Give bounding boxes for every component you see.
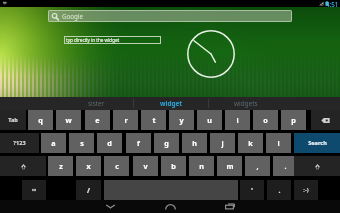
button[interactable]: z	[48, 156, 73, 176]
button[interactable]: t	[141, 110, 166, 130]
button[interactable]: e	[85, 110, 110, 130]
button[interactable]: .	[267, 180, 291, 200]
staticText: .	[284, 161, 287, 171]
staticText: f	[137, 138, 140, 148]
staticText: x	[86, 161, 91, 171]
staticText: Search	[308, 139, 327, 147]
button[interactable]: v	[133, 156, 158, 176]
button[interactable]: u	[197, 110, 222, 130]
staticText: l	[277, 138, 280, 148]
button[interactable]: h	[182, 133, 207, 153]
staticText: b	[171, 161, 176, 171]
button[interactable]: Switch keyboard	[22, 180, 46, 200]
button[interactable]: ?123	[0, 133, 39, 153]
button[interactable]: Tab	[0, 110, 26, 130]
staticText: y	[179, 115, 184, 125]
button[interactable]: typ directly in the widget	[64, 36, 161, 44]
button[interactable]: Backspace	[311, 110, 340, 130]
staticText: typ directly in the widget	[66, 37, 120, 43]
staticText: widgets	[234, 99, 258, 108]
staticText: k	[248, 138, 253, 148]
staticText: Google	[62, 12, 83, 20]
staticText: i	[236, 115, 239, 125]
button[interactable]: Shift	[294, 156, 340, 176]
button[interactable]: s	[69, 133, 94, 153]
button[interactable]: Search	[294, 133, 340, 153]
button[interactable]: Clock widget	[187, 30, 235, 78]
staticText: r	[124, 115, 128, 125]
staticText: u	[207, 115, 212, 125]
staticText: '	[251, 185, 253, 195]
button[interactable]: m	[217, 156, 242, 176]
staticText: .	[278, 185, 281, 195]
button[interactable]: :-)	[294, 180, 318, 200]
staticText: Tab	[8, 116, 18, 124]
button[interactable]: ,	[245, 156, 270, 176]
staticText: o	[263, 115, 268, 125]
staticText: sister	[88, 99, 105, 108]
button[interactable]: Shift	[0, 156, 46, 176]
button[interactable]: x	[76, 156, 101, 176]
button[interactable]: .	[273, 156, 298, 176]
staticText: widget	[160, 99, 183, 108]
button[interactable]: /	[76, 180, 101, 200]
button[interactable]: b	[161, 156, 186, 176]
staticText: g	[164, 138, 169, 148]
button[interactable]: o	[253, 110, 278, 130]
button[interactable]: sister	[59, 97, 133, 110]
button[interactable]: j	[210, 133, 235, 153]
staticText: /	[87, 185, 90, 195]
button[interactable]: '	[240, 180, 264, 200]
staticText: :-)	[303, 186, 309, 194]
button[interactable]: l	[266, 133, 291, 153]
staticText: c	[115, 161, 119, 171]
button[interactable]: a	[41, 133, 66, 153]
button[interactable]: d	[97, 133, 122, 153]
staticText: z	[59, 161, 63, 171]
button[interactable]: k	[238, 133, 263, 153]
button[interactable]: g	[154, 133, 179, 153]
staticText: d	[107, 138, 112, 148]
staticText: p	[291, 115, 296, 125]
staticText: a	[51, 138, 56, 148]
staticText: w	[65, 115, 72, 125]
button[interactable]: widgets	[209, 97, 283, 110]
staticText: t	[152, 115, 156, 125]
button[interactable]: Hide keyboard	[93, 200, 127, 213]
staticText: ?123	[13, 139, 26, 147]
staticText: e	[95, 115, 100, 125]
button[interactable]: i	[225, 110, 250, 130]
staticText: q	[38, 115, 43, 125]
button[interactable]: Recent apps	[213, 200, 247, 213]
staticText: v	[143, 161, 148, 171]
staticText: m	[226, 161, 234, 171]
button[interactable]: w	[56, 110, 81, 130]
staticText: j	[221, 138, 224, 148]
button[interactable]: n	[189, 156, 214, 176]
staticText: s	[80, 138, 84, 148]
button[interactable]: p	[281, 110, 306, 130]
button[interactable]: widget	[134, 97, 208, 110]
button[interactable]: q	[28, 110, 53, 130]
button[interactable]: Home	[153, 200, 187, 213]
button[interactable]: r	[113, 110, 138, 130]
button[interactable]: Google	[48, 10, 292, 22]
staticText: n	[199, 161, 204, 171]
staticText: h	[192, 138, 197, 148]
staticText: ,	[256, 161, 259, 171]
button[interactable]: c	[104, 156, 129, 176]
button[interactable]: y	[169, 110, 194, 130]
button[interactable]: f	[126, 133, 151, 153]
staticText: 4:51	[326, 0, 339, 7]
